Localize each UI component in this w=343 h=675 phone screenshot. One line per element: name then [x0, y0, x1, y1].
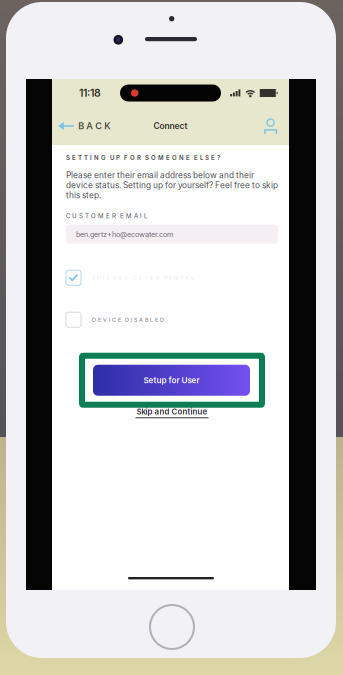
button[interactable]: Setup for User: [93, 365, 250, 396]
button[interactable]: Account: [263, 116, 289, 136]
staticText: Connect: [153, 121, 187, 131]
staticText: 11:18: [79, 87, 101, 99]
button[interactable]: B A C K: [52, 117, 110, 135]
staticText: S E T T I N G U P F O R S O M E O N E E …: [66, 154, 220, 161]
staticText: ben.gertz+ho@ecowater.com: [76, 230, 173, 239]
button[interactable]: T H I S D E V I C E I S A R E N T A L: [66, 244, 278, 286]
staticText: T H I S D E V I C E I S A R E N T A L: [92, 274, 194, 281]
staticText: D E V I C E D I S A B L E D: [92, 316, 164, 323]
button[interactable]: Skip and Continue: [129, 406, 214, 419]
staticText: B A C K: [78, 120, 110, 131]
staticText: Setup for User: [143, 375, 199, 385]
button[interactable]: D E V I C E D I S A B L E D: [66, 286, 278, 328]
staticText: C U S T O M E R E M A I L: [66, 212, 147, 220]
staticText: Skip and Continue: [136, 407, 207, 416]
staticText: Please enter their email address below a…: [66, 170, 278, 200]
